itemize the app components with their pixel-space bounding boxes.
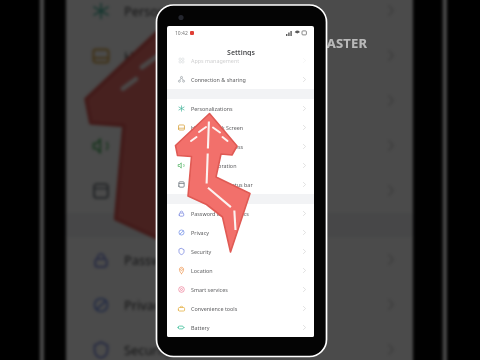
staticText: Password & biometrics bbox=[191, 210, 249, 217]
button[interactable]: Convenience tools bbox=[167, 299, 314, 318]
button[interactable]: Notification & status bar bbox=[167, 175, 314, 194]
button[interactable]: Privacy bbox=[167, 223, 314, 242]
button[interactable]: Home & Lock Screen bbox=[66, 33, 413, 78]
staticText: Privacy bbox=[124, 296, 167, 313]
button[interactable]: Personalizations bbox=[167, 99, 314, 118]
staticText: Personalizations bbox=[191, 105, 233, 112]
button[interactable]: Personalizations bbox=[66, 0, 413, 33]
button[interactable]: Security bbox=[167, 242, 314, 261]
staticText: Smart services bbox=[191, 286, 228, 293]
staticText: Home & Lock Screen bbox=[191, 124, 244, 131]
button[interactable]: Sound & vibration bbox=[66, 123, 413, 168]
button[interactable]: Connection & sharing bbox=[167, 70, 314, 89]
button[interactable]: Privacy bbox=[66, 282, 413, 327]
button[interactable]: Smart services bbox=[167, 280, 314, 299]
staticText: Settings bbox=[227, 48, 255, 58]
staticText: Notification & status bar bbox=[191, 181, 253, 188]
button[interactable]: Sound & vibration bbox=[167, 156, 314, 175]
button[interactable]: Password & biometrics bbox=[66, 237, 413, 282]
button[interactable]: Notification & status bar bbox=[66, 168, 413, 213]
staticText: KINEMASTER bbox=[282, 34, 368, 52]
staticText: Sound & vibration bbox=[124, 137, 232, 154]
staticText: Privacy bbox=[191, 229, 209, 236]
button[interactable]: Battery bbox=[167, 318, 314, 337]
staticText: Apps management bbox=[191, 57, 240, 64]
staticText: Connection & sharing bbox=[191, 76, 246, 83]
staticText: Home & Lock Screen bbox=[124, 47, 248, 64]
button[interactable]: Home & Lock Screen bbox=[167, 118, 314, 137]
staticText: Security bbox=[191, 248, 212, 255]
staticText: Password & biometrics bbox=[124, 251, 262, 268]
button[interactable]: Display & brightness bbox=[66, 78, 413, 123]
staticText: Display & brightness bbox=[191, 143, 244, 150]
staticText: Sound & vibration bbox=[191, 162, 237, 169]
button[interactable]: Display & brightness bbox=[167, 137, 314, 156]
button[interactable]: Location bbox=[167, 261, 314, 280]
staticText: Security bbox=[124, 341, 173, 358]
staticText: Notification & status bar bbox=[124, 182, 271, 199]
staticText: Battery bbox=[191, 324, 210, 331]
staticText: Display & brightness bbox=[124, 92, 248, 109]
button[interactable]: Password & biometrics bbox=[167, 204, 314, 223]
button[interactable]: Security bbox=[66, 327, 413, 360]
staticText: Personalizations bbox=[124, 2, 223, 19]
staticText: Location bbox=[191, 267, 213, 274]
button[interactable]: Apps management bbox=[167, 56, 314, 70]
staticText: K bbox=[300, 12, 312, 35]
staticText: Convenience tools bbox=[191, 305, 238, 312]
staticText: 10:42 bbox=[175, 30, 188, 37]
